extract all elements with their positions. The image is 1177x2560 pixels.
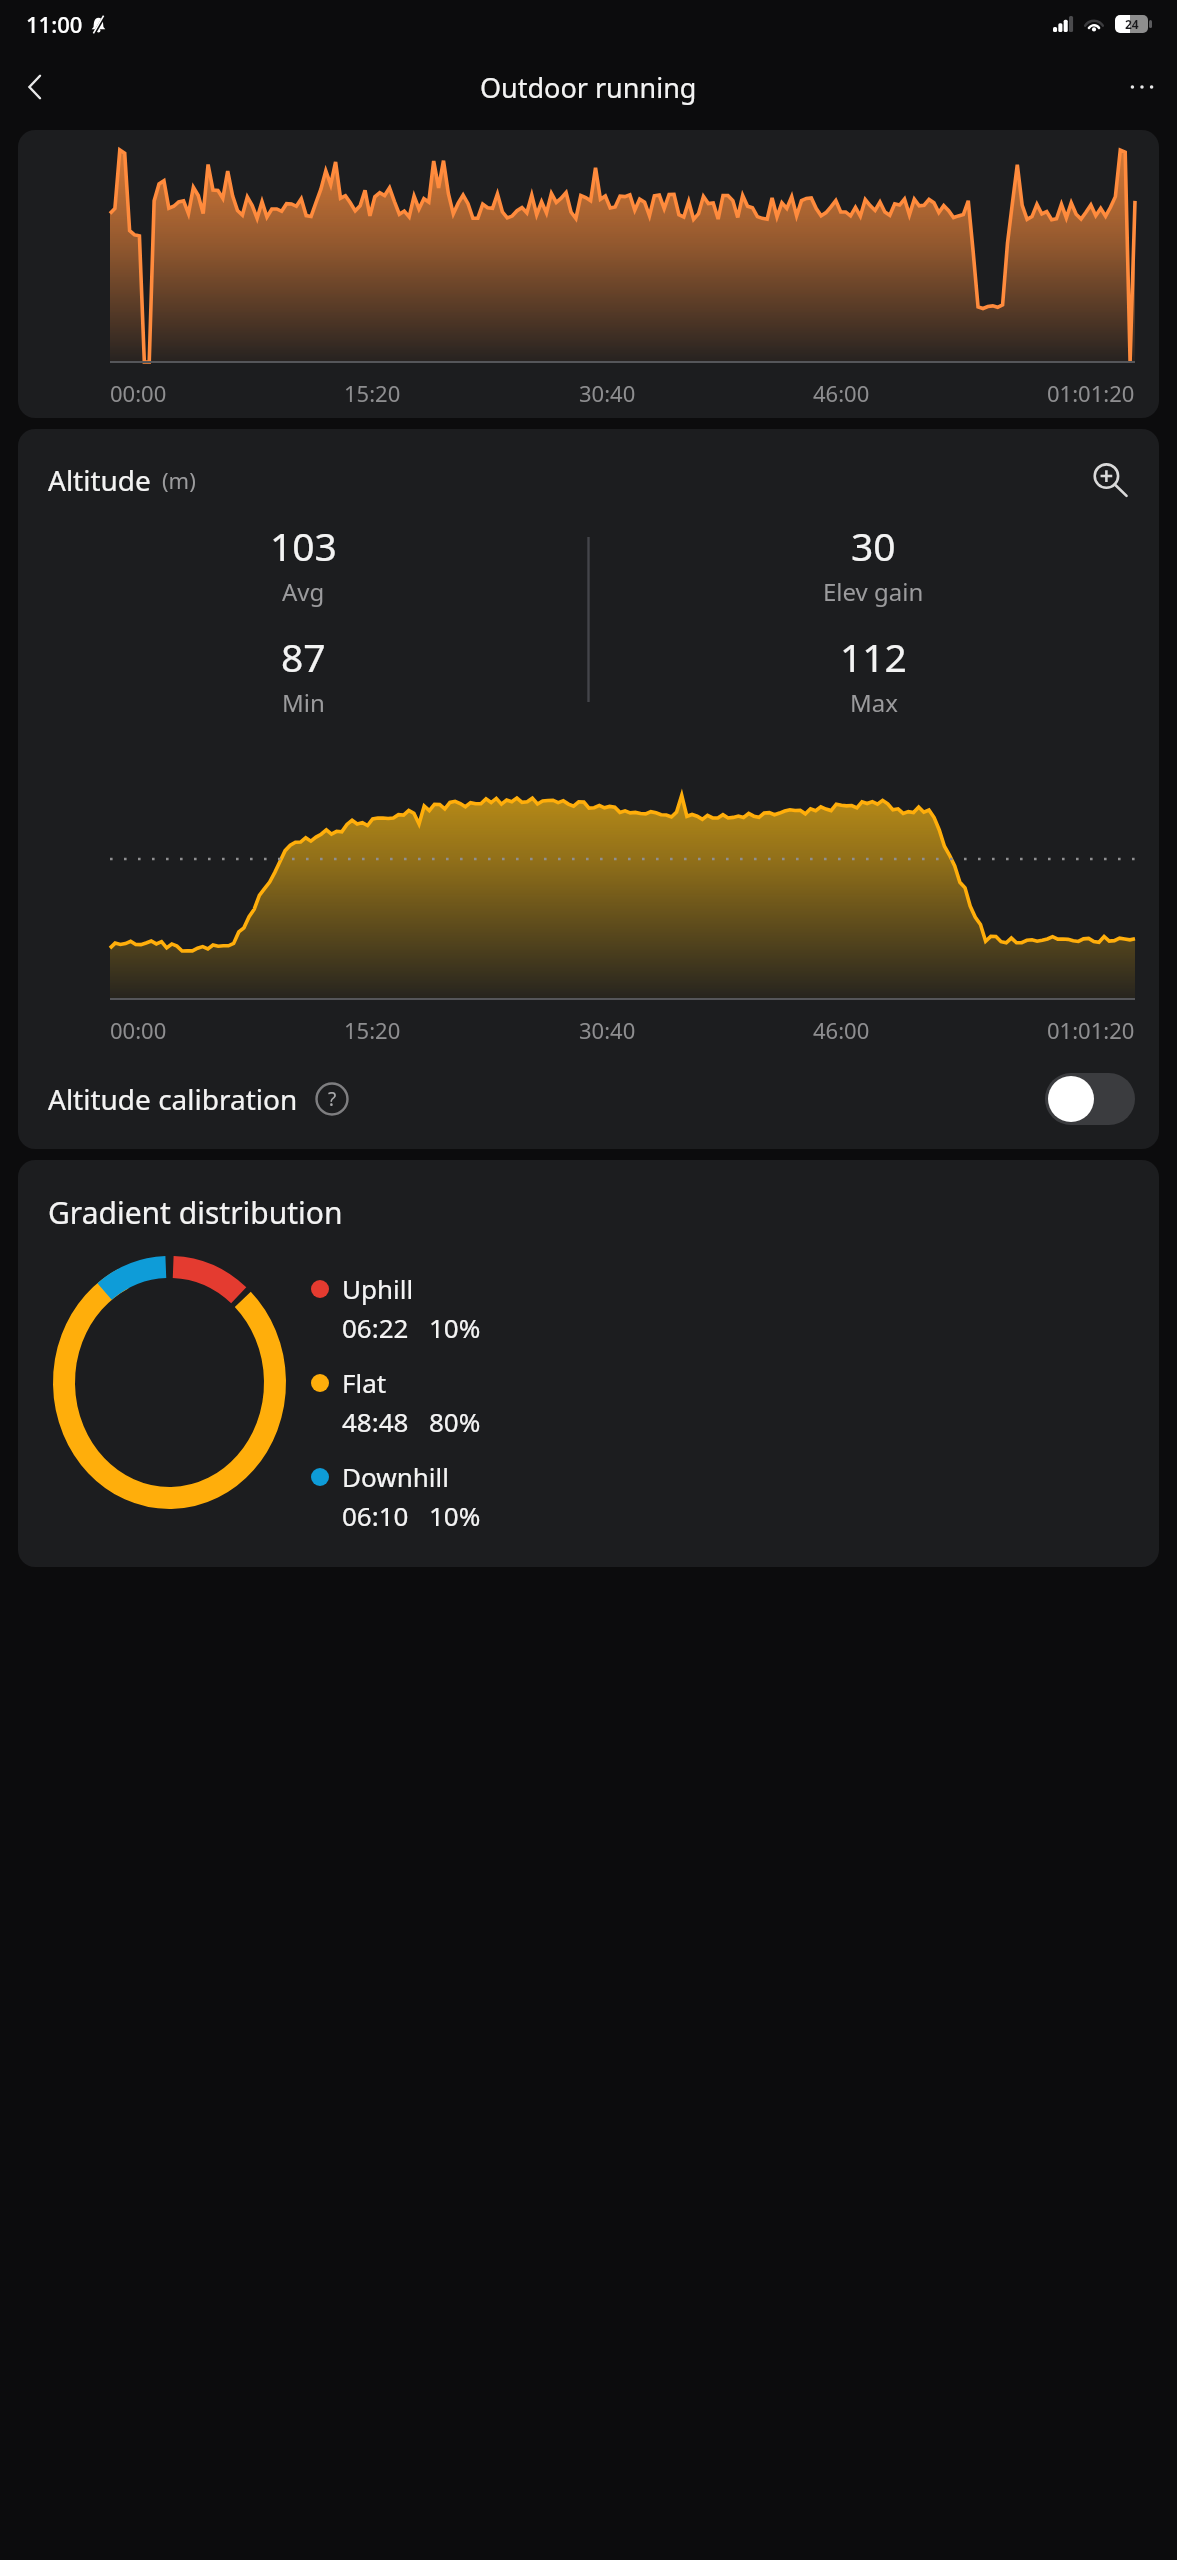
staticText: 24 <box>1125 16 1139 32</box>
staticText: 46:00 <box>813 378 870 408</box>
staticText: 30:40 <box>579 1015 636 1045</box>
staticText: Gradient distribution <box>48 1192 343 1233</box>
staticText: 87 <box>281 630 326 683</box>
staticText: (m) <box>162 465 196 495</box>
button[interactable]: More options <box>1115 60 1169 114</box>
staticText: Max <box>850 686 898 719</box>
staticText: 30 <box>851 519 896 572</box>
staticText: 01:01:20 <box>1047 378 1135 408</box>
staticText: 11:00 <box>26 9 83 39</box>
staticText: ? <box>328 1086 337 1112</box>
staticText: Outdoor running <box>480 69 697 106</box>
staticText: 10% <box>429 1498 481 1533</box>
button[interactable]: Flat <box>311 1365 481 1439</box>
staticText: Elev gain <box>823 575 924 608</box>
staticText: 15:20 <box>344 378 401 408</box>
staticText: Min <box>282 686 325 719</box>
staticText: 15:20 <box>344 1015 401 1045</box>
staticText: 30:40 <box>579 378 636 408</box>
staticText: Altitude calibration <box>48 1080 298 1118</box>
button[interactable]: Altitude calibration toggle <box>1045 1073 1135 1125</box>
staticText: 06:22 <box>342 1310 409 1345</box>
staticText: 00:00 <box>110 1015 167 1045</box>
button[interactable]: 470 <box>18 130 1159 418</box>
staticText: 10% <box>429 1310 481 1345</box>
staticText: Uphill <box>342 1271 414 1306</box>
staticText: 112 <box>840 630 907 683</box>
button[interactable]: Altitude calibration <box>18 1049 1159 1149</box>
staticText: 01:01:20 <box>1047 1015 1135 1045</box>
staticText: 06:10 <box>342 1498 409 1533</box>
staticText: 46:00 <box>813 1015 870 1045</box>
staticText: 103 <box>270 519 337 572</box>
button[interactable]: Zoom in <box>1083 453 1137 507</box>
staticText: Altitude <box>48 461 151 499</box>
button[interactable]: Uphill <box>311 1271 481 1345</box>
button[interactable]: Back <box>8 60 62 114</box>
staticText: 48:48 <box>342 1404 409 1439</box>
staticText: Avg <box>282 575 325 608</box>
staticText: Flat <box>342 1365 387 1400</box>
staticText: Downhill <box>342 1459 449 1494</box>
button[interactable]: Downhill <box>311 1459 481 1533</box>
staticText: 00:00 <box>110 378 167 408</box>
staticText: 80% <box>429 1404 481 1439</box>
